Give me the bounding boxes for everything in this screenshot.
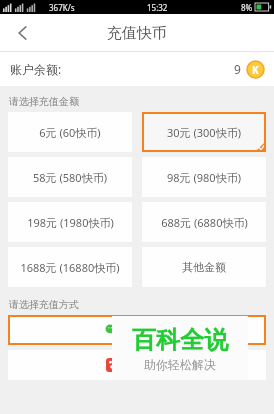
button[interactable]: 账户余额: bbox=[0, 52, 274, 86]
staticText: 百度钱包 bbox=[125, 358, 169, 372]
staticText: 百科全说 bbox=[132, 325, 228, 355]
button[interactable]: 30元 (300快币) bbox=[142, 112, 266, 152]
button[interactable]: 微信 bbox=[8, 315, 266, 345]
staticText: 微信 bbox=[124, 323, 146, 337]
staticText: 账户余额: bbox=[10, 61, 62, 77]
staticText: 58元 (580快币) bbox=[33, 170, 107, 185]
staticText: 1688元 (16880快币) bbox=[20, 260, 120, 275]
staticText: 15:32 bbox=[147, 2, 168, 13]
staticText: 8% bbox=[241, 2, 253, 13]
button[interactable]: Back bbox=[6, 16, 40, 50]
button[interactable]: 1688元 (16880快币) bbox=[8, 247, 132, 287]
staticText: 6元 (60快币) bbox=[39, 125, 101, 140]
staticText: 367K/s bbox=[49, 2, 75, 13]
button[interactable]: 98元 (980快币) bbox=[142, 157, 266, 197]
staticText: 9 bbox=[234, 61, 241, 77]
staticText: K bbox=[252, 63, 259, 77]
staticText: 充值快币 bbox=[107, 24, 167, 43]
button[interactable]: 百度钱包 bbox=[8, 350, 266, 380]
button[interactable]: 其他金额 bbox=[142, 247, 266, 287]
staticText: 请选择充值方式 bbox=[9, 298, 79, 311]
button[interactable]: 198元 (1980快币) bbox=[8, 202, 132, 242]
staticText: 198元 (1980快币) bbox=[27, 215, 114, 230]
staticText: 688元 (6880快币) bbox=[161, 215, 248, 230]
staticText: 30元 (300快币) bbox=[167, 125, 241, 140]
button[interactable]: 6元 (60快币) bbox=[8, 112, 132, 152]
staticText: 98元 (980快币) bbox=[167, 170, 241, 185]
staticText: 助你轻松解决 bbox=[144, 357, 216, 372]
staticText: 推荐 bbox=[153, 326, 167, 335]
button[interactable]: 58元 (580快币) bbox=[8, 157, 132, 197]
staticText: 请选择充值金额 bbox=[9, 95, 79, 108]
staticText: 其他金额 bbox=[182, 260, 226, 274]
button[interactable]: 688元 (6880快币) bbox=[142, 202, 266, 242]
